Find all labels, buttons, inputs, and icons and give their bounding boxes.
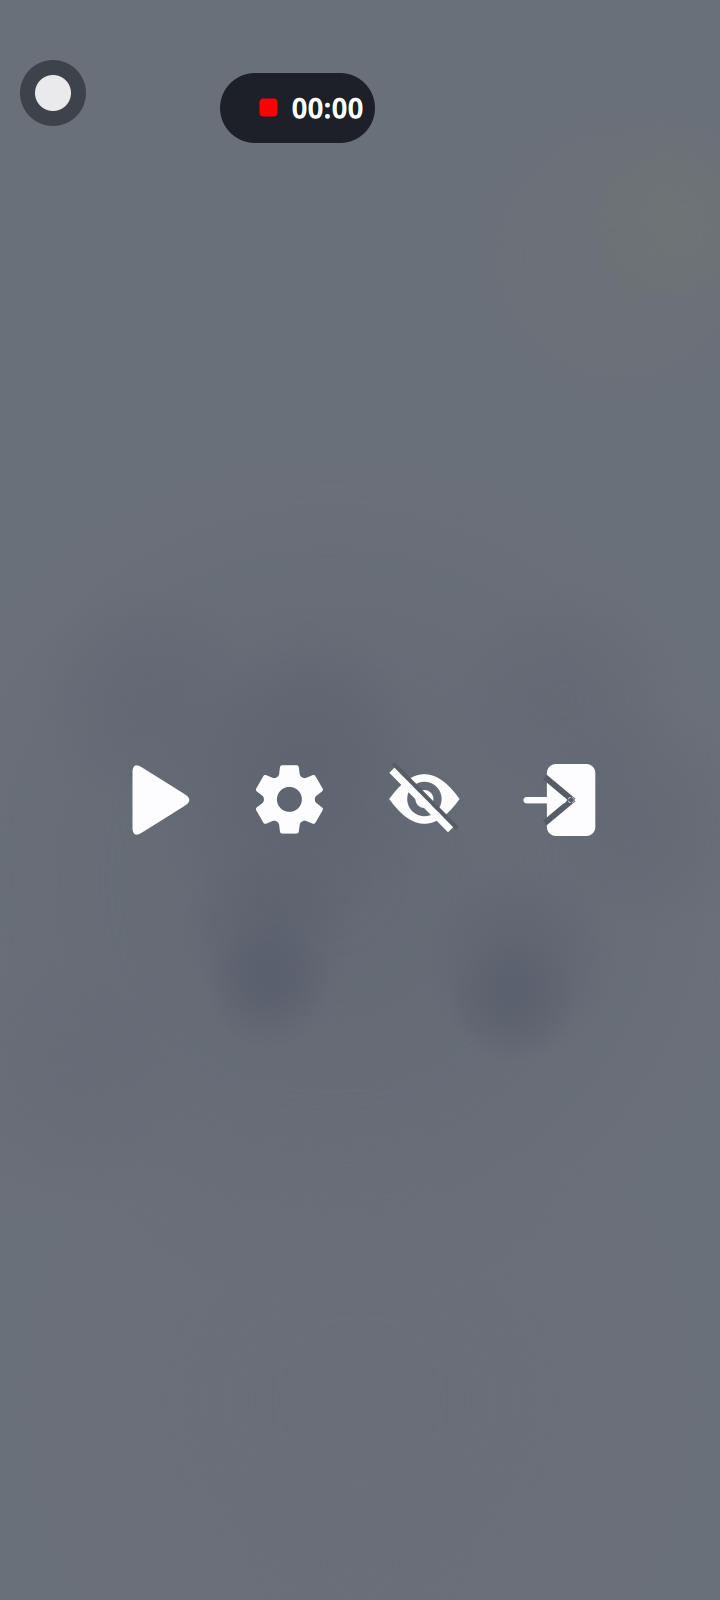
button[interactable]: Record [20,60,86,126]
button[interactable]: Play [133,764,191,838]
staticText: 00:00 [291,89,363,127]
button[interactable]: Log in [523,764,597,836]
button[interactable]: Hide preview [387,762,463,836]
button[interactable]: Settings [254,764,325,835]
